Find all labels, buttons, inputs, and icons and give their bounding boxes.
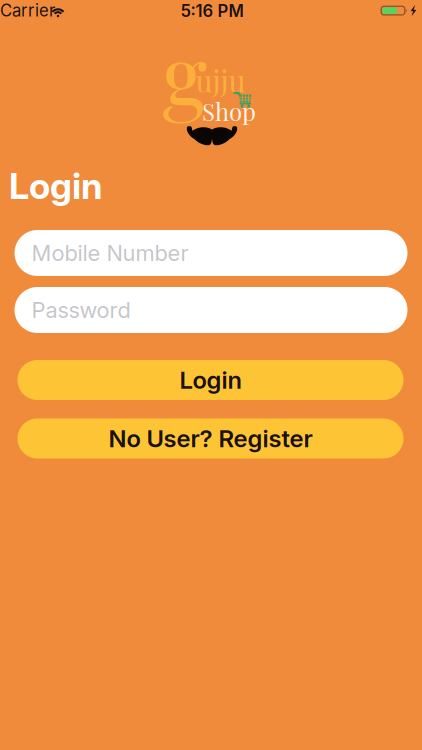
staticText: Login — [179, 365, 241, 394]
staticText: g — [162, 17, 206, 129]
staticText: ujju — [195, 60, 245, 99]
staticText: Carrier — [0, 0, 55, 21]
staticText: Mobile Number — [31, 240, 188, 266]
staticText: No User? Register — [108, 424, 312, 453]
staticText: Password — [31, 297, 130, 323]
button[interactable]: Mobile Number — [14, 230, 407, 276]
staticText: Login — [9, 164, 102, 208]
staticText: Shop — [202, 95, 256, 127]
button[interactable]: Login — [17, 360, 403, 400]
staticText: 5:16 PM — [180, 1, 243, 21]
button[interactable]: No User? Register — [17, 418, 403, 458]
button[interactable]: Password — [14, 287, 407, 333]
